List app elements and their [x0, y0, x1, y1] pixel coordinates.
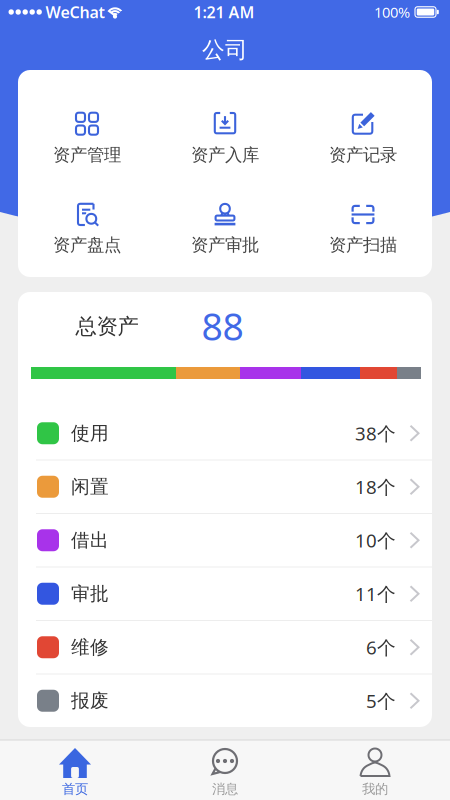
staticText: 维修 [71, 636, 109, 659]
button[interactable]: 闲置 [18, 460, 432, 513]
staticText: 资产记录 [329, 144, 397, 166]
staticText: 38个 [355, 421, 396, 446]
staticText: 6个 [366, 635, 396, 660]
button[interactable]: 我的 [300, 740, 450, 800]
staticText: 资产盘点 [53, 234, 121, 256]
button[interactable]: 首页 [0, 740, 150, 800]
staticText: 闲置 [71, 475, 109, 498]
staticText: 公司 [202, 36, 248, 64]
button[interactable]: 资产扫描 [294, 173, 432, 277]
button[interactable]: 资产入库 [156, 70, 294, 173]
button[interactable]: 资产审批 [156, 173, 294, 277]
staticText: 100% [374, 2, 410, 22]
button[interactable]: 资产盘点 [18, 173, 156, 277]
button[interactable]: 资产管理 [18, 70, 156, 173]
staticText: 资产扫描 [329, 234, 397, 256]
staticText: 5个 [366, 688, 396, 713]
staticText: 18个 [355, 474, 396, 499]
button[interactable]: 审批 [18, 567, 432, 620]
button[interactable]: 报废 [18, 674, 432, 727]
staticText: 借出 [71, 529, 109, 552]
staticText: 审批 [71, 582, 109, 605]
staticText: 报废 [71, 689, 109, 712]
staticText: 我的 [362, 781, 388, 797]
staticText: 1:21 AM [193, 1, 254, 23]
button[interactable]: 消息 [150, 740, 300, 800]
staticText: 11个 [355, 581, 396, 606]
staticText: 使用 [71, 422, 109, 445]
button[interactable]: 借出 [18, 514, 432, 566]
staticText: 消息 [212, 781, 238, 797]
button[interactable]: 使用 [18, 407, 432, 459]
staticText: 资产管理 [53, 144, 121, 166]
staticText: WeChat [45, 1, 104, 23]
staticText: 10个 [355, 528, 396, 553]
staticText: 资产审批 [191, 234, 259, 256]
staticText: 88 [201, 301, 243, 351]
staticText: 资产入库 [191, 144, 259, 166]
button[interactable]: 资产记录 [294, 70, 432, 173]
staticText: 首页 [62, 781, 88, 797]
staticText: 总资产 [75, 313, 138, 340]
button[interactable]: 维修 [18, 621, 432, 673]
